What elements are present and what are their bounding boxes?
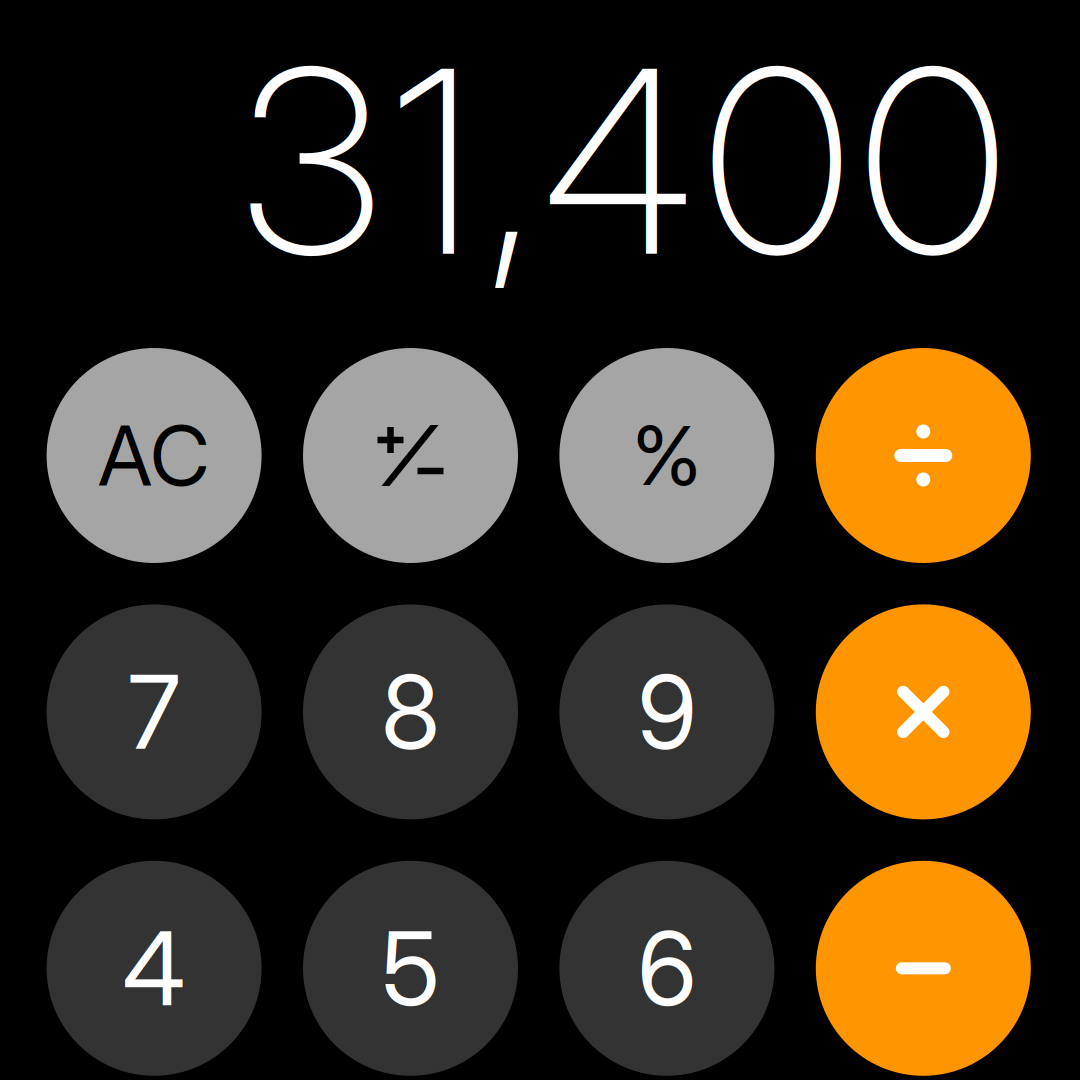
staticText: % <box>632 406 701 505</box>
staticText: 9 <box>637 651 696 773</box>
button[interactable]: % <box>559 348 774 563</box>
staticText: AC <box>98 405 210 505</box>
button[interactable]: AC <box>47 348 262 563</box>
staticText: 5 <box>381 907 439 1030</box>
button[interactable]: 7 <box>47 604 262 819</box>
staticText: 8 <box>381 651 440 773</box>
button[interactable]: 9 <box>559 604 774 819</box>
button[interactable]: 6 <box>559 861 774 1076</box>
button[interactable]: 4 <box>47 861 262 1076</box>
button[interactable]: Multiply <box>816 604 1031 819</box>
staticText: 31,400 <box>240 7 1005 315</box>
button[interactable]: Divide <box>816 348 1031 563</box>
staticText: 4 <box>123 907 186 1030</box>
staticText: 6 <box>637 907 696 1030</box>
button[interactable]: Subtract <box>816 861 1031 1076</box>
button[interactable]: 8 <box>303 604 518 819</box>
button[interactable]: Toggle sign <box>303 348 518 563</box>
staticText: 7 <box>128 651 180 773</box>
button[interactable]: 5 <box>303 861 518 1076</box>
